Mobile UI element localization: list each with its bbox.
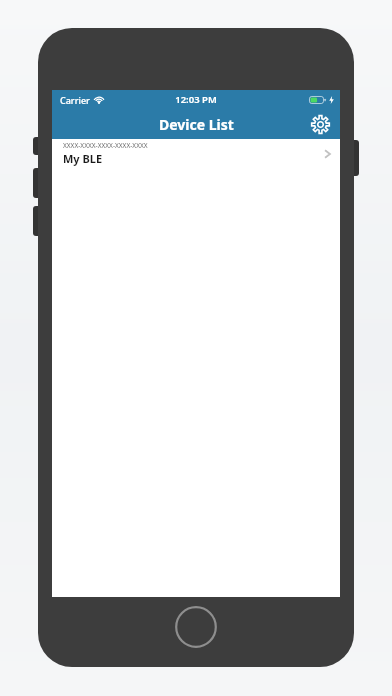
staticText: Device List [159, 115, 234, 134]
staticText: XXXX-XXXX-XXXX-XXXX-XXXX [63, 141, 148, 150]
staticText: Carrier [60, 94, 90, 106]
staticText: My BLE [63, 151, 103, 166]
button[interactable]: Settings [308, 112, 332, 136]
button[interactable]: XXXX-XXXX-XXXX-XXXX-XXXX [52, 139, 340, 168]
staticText: 12:03 PM [175, 93, 217, 106]
